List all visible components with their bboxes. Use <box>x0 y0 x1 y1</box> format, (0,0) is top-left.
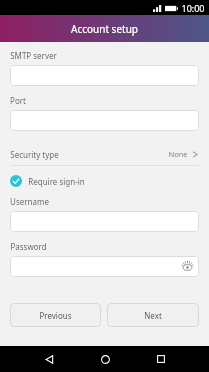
button[interactable]: Recent apps <box>144 346 178 372</box>
button[interactable]: Previous <box>10 303 101 327</box>
staticText: Require sign-in <box>28 176 85 187</box>
staticText: Username <box>10 196 49 207</box>
button[interactable] <box>10 65 199 86</box>
button[interactable]: Next <box>107 303 199 327</box>
staticText: Password <box>10 241 47 252</box>
button[interactable] <box>10 110 199 131</box>
staticText: 10:00 <box>181 2 205 14</box>
button[interactable]: Security type <box>10 143 199 165</box>
staticText: Port <box>10 95 26 106</box>
staticText: Security type <box>10 149 59 160</box>
staticText: None <box>168 149 188 159</box>
button[interactable]: Home <box>88 346 122 372</box>
button[interactable]: Show password <box>180 260 194 274</box>
staticText: Previous <box>39 310 72 321</box>
staticText: Account setup <box>71 22 138 36</box>
button[interactable]: Back <box>32 346 66 372</box>
button[interactable]: Show password <box>10 256 199 277</box>
staticText: SMTP server <box>10 50 57 61</box>
staticText: Next <box>144 310 162 321</box>
button[interactable] <box>10 211 199 232</box>
button[interactable]: Require sign-in <box>10 173 199 189</box>
